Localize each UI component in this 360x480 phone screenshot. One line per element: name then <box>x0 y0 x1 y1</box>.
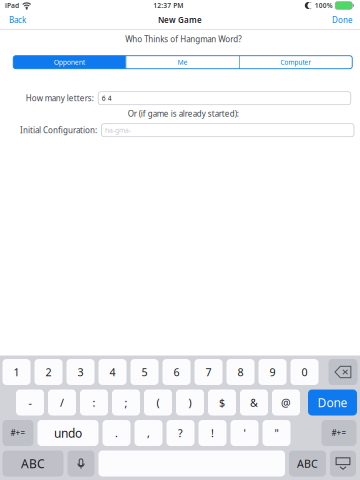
staticText: , <box>147 426 150 440</box>
button[interactable]: ! <box>198 420 226 446</box>
button[interactable]: & <box>240 389 268 415</box>
button[interactable]: Computer <box>240 56 352 69</box>
staticText: ha-gma- <box>105 126 131 135</box>
button[interactable]: Opponent <box>13 56 126 69</box>
button[interactable]: - <box>16 389 44 415</box>
button[interactable]: 2 <box>34 359 62 385</box>
staticText: 6 <box>173 365 179 379</box>
staticText: 3 <box>77 365 83 379</box>
button[interactable]: 6 <box>162 359 190 385</box>
button[interactable]: 9 <box>258 359 286 385</box>
button[interactable]: : <box>80 389 108 415</box>
button[interactable]: , <box>134 420 162 446</box>
button[interactable]: Me <box>126 56 239 69</box>
button[interactable]: ' <box>230 420 258 446</box>
button[interactable]: Delete <box>328 359 357 385</box>
button[interactable]: undo <box>37 420 98 446</box>
button[interactable]: 8 <box>226 359 254 385</box>
button[interactable]: #+= <box>2 420 33 446</box>
staticText: ' <box>243 426 245 440</box>
button[interactable]: 1 <box>2 359 30 385</box>
staticText: 7 <box>205 365 211 379</box>
staticText: $ <box>219 395 225 410</box>
staticText: Done <box>317 394 347 410</box>
button[interactable]: #+= <box>321 420 356 446</box>
staticText: 1 <box>13 365 19 379</box>
staticText: Computer <box>280 58 311 67</box>
staticText: 0 <box>301 365 307 379</box>
button[interactable]: 7 <box>194 359 222 385</box>
button[interactable]: Dictation <box>67 450 94 476</box>
staticText: " <box>274 426 278 440</box>
staticText: Initial Configuration: <box>20 125 97 135</box>
staticText: Or (if game is already started): <box>128 108 239 119</box>
staticText: Who Thinks of Hangman Word? <box>125 34 241 44</box>
staticText: ABC <box>297 456 318 471</box>
staticText: @ <box>281 395 291 410</box>
staticText: undo <box>54 425 82 441</box>
staticText: Done <box>332 15 353 25</box>
staticText: ( <box>156 395 159 410</box>
staticText: : <box>92 395 95 410</box>
button[interactable]: ; <box>112 389 140 415</box>
staticText: 12:37 PM <box>153 1 183 10</box>
button[interactable]: / <box>48 389 76 415</box>
staticText: #+= <box>10 428 25 438</box>
staticText: 6 4 <box>102 94 112 103</box>
staticText: - <box>28 395 31 410</box>
staticText: Opponent <box>54 58 85 67</box>
button[interactable]: ? <box>166 420 194 446</box>
button[interactable]: $ <box>208 389 236 415</box>
staticText: 4 <box>109 365 115 379</box>
button[interactable]: @ <box>272 389 300 415</box>
staticText: ? <box>178 426 183 440</box>
staticText: How many letters: <box>26 93 94 103</box>
button[interactable]: Back <box>0 11 34 29</box>
button[interactable]: Done <box>308 389 357 415</box>
staticText: 100% <box>315 1 333 10</box>
staticText: 8 <box>237 365 243 379</box>
button[interactable]: 5 <box>130 359 158 385</box>
staticText: ) <box>188 395 191 410</box>
button[interactable]: 0 <box>290 359 318 385</box>
button[interactable]: ( <box>144 389 172 415</box>
staticText: ; <box>124 395 127 410</box>
staticText: 9 <box>269 365 275 379</box>
button[interactable]: 4 <box>98 359 126 385</box>
button[interactable]: Done <box>324 11 360 29</box>
button[interactable]: ABC <box>2 450 63 476</box>
button[interactable]: 3 <box>66 359 94 385</box>
button[interactable]: " <box>262 420 290 446</box>
staticText: ABC <box>21 455 45 471</box>
staticText: #+= <box>331 428 346 438</box>
button[interactable]: ) <box>176 389 204 415</box>
staticText: Me <box>178 58 188 67</box>
staticText: 5 <box>141 365 147 379</box>
staticText: ! <box>211 426 214 440</box>
button[interactable]: ABC <box>289 450 326 476</box>
button[interactable]: . <box>102 420 130 446</box>
staticText: . <box>115 426 118 440</box>
button[interactable]: Hide Keyboard <box>330 450 356 476</box>
button[interactable] <box>98 450 285 476</box>
staticText: iPad <box>5 1 19 10</box>
staticText: Back <box>9 15 26 25</box>
staticText: / <box>60 395 64 410</box>
staticText: & <box>250 395 258 410</box>
staticText: 2 <box>45 365 51 379</box>
staticText: New Game <box>158 15 202 25</box>
